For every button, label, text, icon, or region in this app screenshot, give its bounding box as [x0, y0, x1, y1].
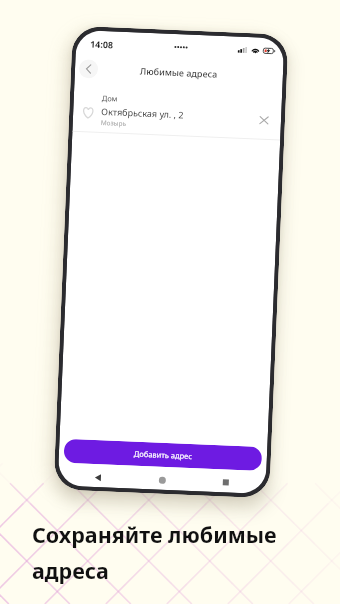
staticText: Дом: [102, 93, 118, 104]
staticText: Любимые адреса: [140, 64, 218, 80]
staticText: Сохраняйте любимые адреса: [32, 520, 277, 586]
button[interactable]: Recents: [215, 472, 236, 493]
staticText: Октябрьская ул. , 2: [101, 105, 184, 120]
button[interactable]: Дом: [72, 89, 282, 139]
button[interactable]: Remove: [256, 111, 272, 128]
button[interactable]: Back: [79, 59, 98, 79]
staticText: Мозырь: [101, 118, 127, 128]
button[interactable]: Добавить адрес: [63, 439, 262, 471]
button[interactable]: Back: [87, 467, 108, 487]
button[interactable]: Home: [151, 469, 172, 490]
staticText: 14:08: [90, 37, 114, 50]
staticText: Добавить адрес: [134, 449, 193, 461]
